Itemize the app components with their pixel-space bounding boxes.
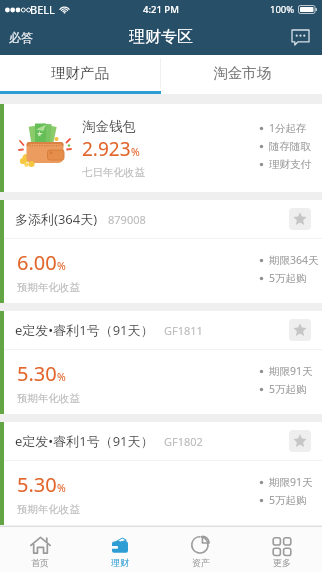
staticText: 2.923	[82, 136, 131, 162]
staticText: 资产	[192, 557, 210, 568]
staticText: 期限364天	[269, 253, 319, 267]
staticText: 4:21 PM	[143, 3, 179, 16]
staticText: 首页	[31, 557, 49, 568]
staticText: 淘金市场	[213, 64, 271, 82]
staticText: 1分起存	[269, 121, 307, 135]
staticText: e定发•睿利1号（91天）	[15, 321, 154, 339]
staticText: %	[57, 481, 66, 495]
staticText: 期限91天	[269, 364, 313, 378]
staticText: 期限91天	[269, 475, 313, 489]
staticText: BELL	[30, 2, 55, 17]
button[interactable]: 更多	[241, 527, 322, 572]
button[interactable]: 淘金市场	[161, 55, 322, 91]
button[interactable]: Favorite	[289, 319, 311, 341]
staticText: 预期年化收益	[17, 392, 80, 405]
staticText: 100%	[270, 3, 295, 16]
staticText: %	[57, 259, 66, 273]
staticText: %	[57, 370, 66, 384]
staticText: 淘金钱包	[82, 118, 136, 135]
staticText: 5万起购	[269, 271, 307, 285]
staticText: GF1811	[164, 323, 203, 338]
button[interactable]: Messages	[278, 19, 322, 55]
staticText: e定发•睿利1号（91天）	[15, 432, 154, 450]
staticText: 5.30	[17, 471, 57, 498]
button[interactable]: 资产	[160, 527, 241, 572]
staticText: 5.30	[17, 360, 57, 387]
staticText: 更多	[273, 557, 291, 568]
button[interactable]: e定发•睿利1号（91天）	[0, 311, 322, 414]
staticText: 预期年化收益	[17, 503, 80, 516]
staticText: 理财专区	[129, 27, 193, 47]
button[interactable]: 理财产品	[0, 55, 160, 91]
button[interactable]: 首页	[0, 527, 80, 572]
staticText: 必答	[9, 30, 33, 45]
staticText: 随存随取	[269, 140, 311, 153]
button[interactable]: 多添利(364天)	[0, 200, 322, 303]
button[interactable]: 淘金钱包	[0, 104, 322, 192]
staticText: 5万起购	[269, 382, 307, 396]
staticText: %	[131, 145, 140, 159]
staticText: 多添利(364天)	[15, 210, 98, 228]
staticText: 理财支付	[269, 158, 311, 171]
staticText: 6.00	[17, 249, 57, 276]
staticText: GF1802	[164, 434, 203, 449]
staticText: 5万起购	[269, 493, 307, 507]
staticText: 七日年化收益	[82, 166, 145, 179]
staticText: 预期年化收益	[17, 281, 80, 294]
staticText: 理财	[111, 557, 129, 568]
button[interactable]: Favorite	[289, 430, 311, 452]
button[interactable]: e定发•睿利1号（91天）	[0, 422, 322, 525]
button[interactable]: 必答	[0, 19, 48, 55]
staticText: 879008	[108, 212, 146, 227]
button[interactable]: 理财	[80, 527, 160, 572]
staticText: 理财产品	[51, 64, 109, 82]
button[interactable]: Favorite	[289, 208, 311, 230]
